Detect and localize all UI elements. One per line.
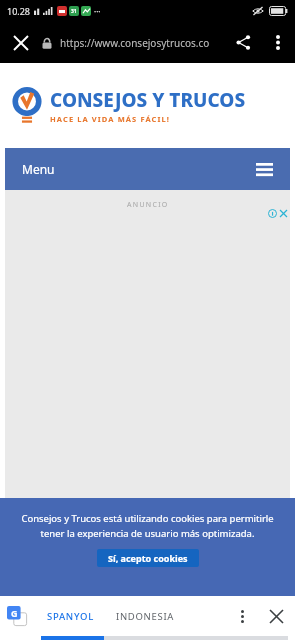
button[interactable]: More options: [227, 596, 257, 636]
staticText: 10.28: [7, 5, 31, 17]
staticText: Consejos y Trucos está utilizando cookie…: [18, 512, 277, 540]
button[interactable]: SPANYOL: [44, 600, 97, 633]
staticText: ANUNCIO: [127, 200, 169, 210]
button[interactable]: Share: [225, 22, 261, 63]
button[interactable]: Menu: [5, 148, 290, 190]
button[interactable]: Sí, acepto cookies: [97, 549, 199, 567]
staticText: ···: [94, 6, 101, 17]
staticText: https://www.consejosytrucos.co: [60, 36, 210, 50]
staticText: CONSEJOS Y TRUCOS: [50, 87, 246, 113]
staticText: Menu: [22, 161, 55, 177]
staticText: 31: [71, 8, 77, 15]
button[interactable]: INDONESIA: [113, 600, 178, 633]
button[interactable]: Close translate bar: [257, 596, 295, 636]
staticText: G: [11, 607, 18, 619]
staticText: HACE LA VIDA MÁS FÁCIL!: [50, 114, 171, 124]
staticText: SPANYOL: [47, 610, 94, 623]
staticText: Sí, acepto cookies: [108, 552, 188, 564]
button[interactable]: Close: [0, 22, 42, 63]
button[interactable]: More options: [261, 22, 295, 63]
button[interactable]: Close ad: [268, 209, 288, 218]
staticText: INDONESIA: [116, 610, 175, 623]
